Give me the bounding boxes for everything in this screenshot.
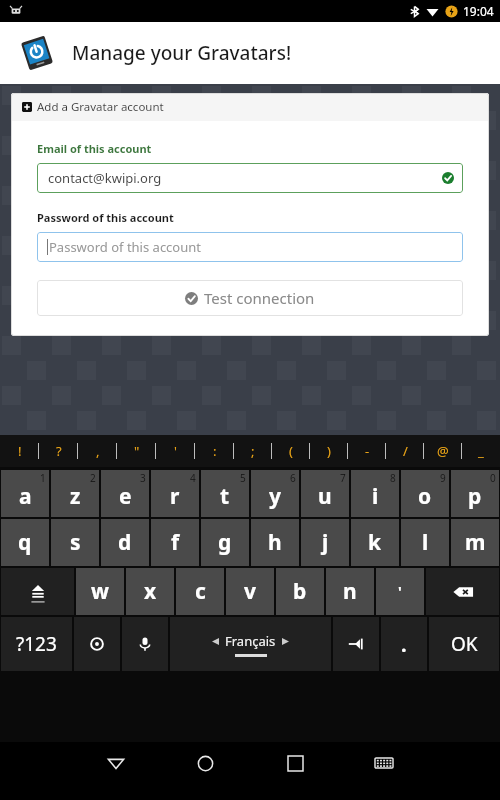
staticText: / xyxy=(403,442,408,460)
staticText: ; xyxy=(251,442,255,460)
staticText: 2 xyxy=(90,471,96,485)
staticText: x xyxy=(144,577,157,606)
button[interactable]: contact@kwipi.org xyxy=(37,163,463,193)
staticText: j xyxy=(322,528,329,557)
button[interactable]: Back xyxy=(95,742,137,784)
button[interactable]: 7 xyxy=(301,470,349,517)
staticText: ) xyxy=(327,442,331,460)
button[interactable]: ' xyxy=(376,568,424,615)
staticText: s xyxy=(70,528,81,557)
button[interactable]: 8 xyxy=(351,470,399,517)
staticText: q xyxy=(18,528,32,557)
staticText: Manage your Gravatars! xyxy=(72,40,292,66)
button[interactable]: 1 xyxy=(1,470,49,517)
button[interactable]: Password of this account xyxy=(37,232,463,262)
staticText: o xyxy=(418,482,432,511)
staticText: w xyxy=(91,577,109,606)
button[interactable]: w xyxy=(76,568,124,615)
staticText: , xyxy=(96,442,100,460)
button[interactable]: g xyxy=(201,519,249,566)
button[interactable]: Home xyxy=(184,742,226,784)
button[interactable]: x xyxy=(126,568,174,615)
staticText: u xyxy=(318,482,332,511)
button[interactable]: Recent apps xyxy=(274,742,316,784)
button[interactable]: Hide keyboard xyxy=(363,742,405,784)
staticText: y xyxy=(269,482,281,511)
staticText: Test connection xyxy=(204,288,315,308)
button[interactable]: j xyxy=(301,519,349,566)
button[interactable]: Français xyxy=(170,617,331,671)
button[interactable]: c xyxy=(176,568,224,615)
button[interactable]: ? xyxy=(39,435,78,467)
staticText: 1 xyxy=(40,471,46,485)
button[interactable]: Backspace xyxy=(426,568,499,615)
staticText: _ xyxy=(478,442,484,460)
button[interactable]: 0 xyxy=(451,470,499,517)
staticText: m xyxy=(465,528,486,557)
button[interactable]: 4 xyxy=(151,470,199,517)
button[interactable]: Add a Gravatar account xyxy=(11,93,489,121)
button[interactable]: 9 xyxy=(401,470,449,517)
staticText: 0 xyxy=(490,471,496,485)
button[interactable]: v xyxy=(226,568,274,615)
staticText: Password of this account xyxy=(49,238,201,256)
button[interactable]: _ xyxy=(462,435,500,467)
button[interactable]: 2 xyxy=(51,470,99,517)
staticText: ?123 xyxy=(16,631,57,657)
button[interactable]: " xyxy=(117,435,156,467)
button[interactable]: s xyxy=(51,519,99,566)
button[interactable]: Tab xyxy=(333,617,379,671)
button[interactable]: . xyxy=(381,617,427,671)
staticText: ( xyxy=(289,442,293,460)
button[interactable]: n xyxy=(326,568,374,615)
button[interactable]: OK xyxy=(429,617,499,671)
button[interactable]: 3 xyxy=(101,470,149,517)
staticText: 5 xyxy=(240,471,246,485)
staticText: t xyxy=(220,482,230,511)
button[interactable]: ' xyxy=(156,435,195,467)
staticText: n xyxy=(343,577,357,606)
button[interactable]: ?123 xyxy=(1,617,72,671)
button[interactable]: l xyxy=(401,519,449,566)
button[interactable]: Test connection xyxy=(37,280,463,316)
staticText: 6 xyxy=(290,471,296,485)
button[interactable]: 6 xyxy=(251,470,299,517)
button[interactable]: Voice input xyxy=(122,617,168,671)
staticText: r xyxy=(170,482,180,511)
button[interactable]: , xyxy=(78,435,117,467)
staticText: e xyxy=(119,482,132,511)
button[interactable]: : xyxy=(195,435,234,467)
button[interactable]: ; xyxy=(234,435,272,467)
button[interactable]: d xyxy=(101,519,149,566)
staticText: h xyxy=(268,528,282,557)
button[interactable]: - xyxy=(348,435,386,467)
button[interactable]: q xyxy=(1,519,49,566)
button[interactable]: ) xyxy=(310,435,348,467)
staticText: i xyxy=(372,482,379,511)
button[interactable]: Settings xyxy=(74,617,120,671)
staticText: c xyxy=(195,577,206,606)
button[interactable]: ! xyxy=(0,435,39,467)
button[interactable]: Shift xyxy=(1,568,74,615)
staticText: v xyxy=(244,577,256,606)
staticText: contact@kwipi.org xyxy=(48,169,162,187)
button[interactable]: @ xyxy=(424,435,462,467)
button[interactable]: m xyxy=(451,519,499,566)
staticText: b xyxy=(293,577,307,606)
staticText: ! xyxy=(18,442,22,460)
staticText: z xyxy=(70,482,81,511)
button[interactable]: / xyxy=(386,435,424,467)
button[interactable]: h xyxy=(251,519,299,566)
button[interactable]: 5 xyxy=(201,470,249,517)
staticText: : xyxy=(213,442,217,460)
staticText: p xyxy=(468,482,482,511)
button[interactable]: b xyxy=(276,568,324,615)
button[interactable]: f xyxy=(151,519,199,566)
button[interactable]: ( xyxy=(272,435,310,467)
staticText: 8 xyxy=(390,471,396,485)
staticText: ' xyxy=(174,442,177,460)
staticText: OK xyxy=(451,631,478,657)
button[interactable]: k xyxy=(351,519,399,566)
staticText: l xyxy=(422,528,429,557)
staticText: k xyxy=(368,528,382,557)
